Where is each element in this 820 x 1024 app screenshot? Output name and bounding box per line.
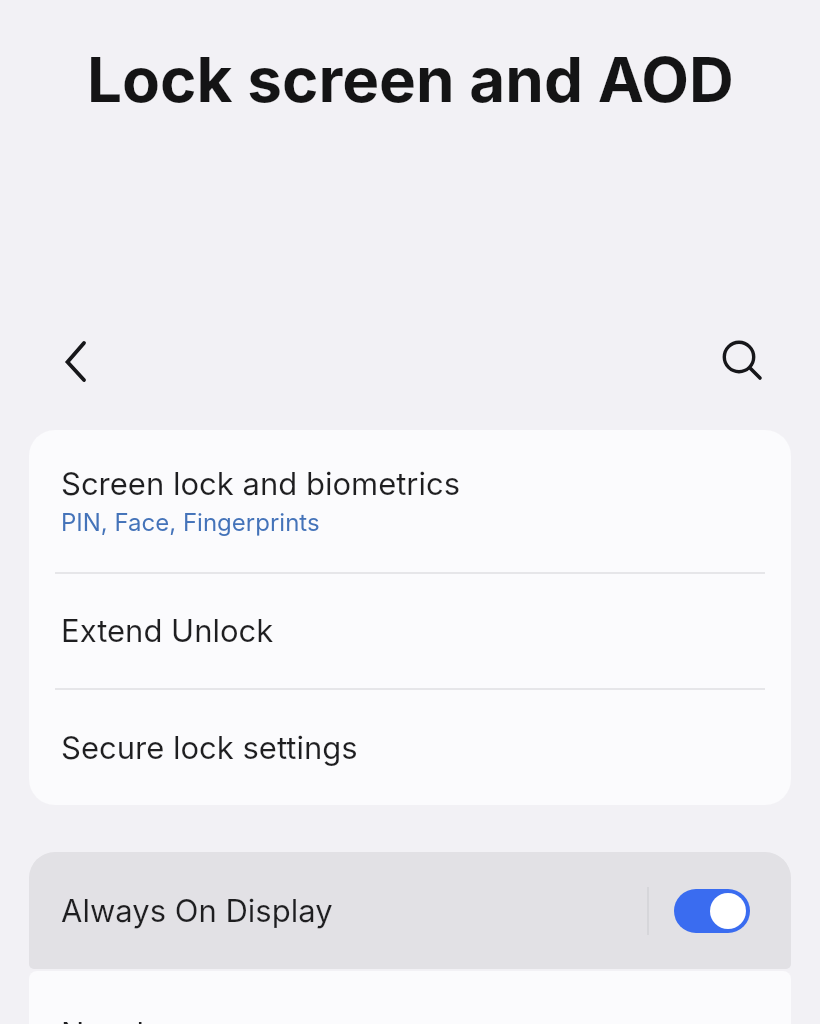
staticText: Always On Display (61, 892, 333, 930)
button[interactable]: Now bar (29, 971, 791, 1024)
staticText: Lock screen and AOD (87, 42, 734, 117)
button[interactable] (674, 889, 750, 933)
button[interactable]: Secure lock settings (29, 690, 791, 805)
staticText: Now bar (61, 1015, 185, 1024)
staticText: PIN, Face, Fingerprints (61, 508, 320, 537)
staticText: Extend Unlock (61, 612, 274, 650)
button[interactable] (714, 332, 770, 388)
button[interactable]: Always On Display (29, 852, 791, 969)
button[interactable]: Extend Unlock (29, 574, 791, 688)
staticText: Screen lock and biometrics (61, 465, 461, 503)
button[interactable] (50, 336, 100, 386)
staticText: Secure lock settings (61, 729, 358, 767)
button[interactable]: Screen lock and biometrics (29, 430, 791, 572)
